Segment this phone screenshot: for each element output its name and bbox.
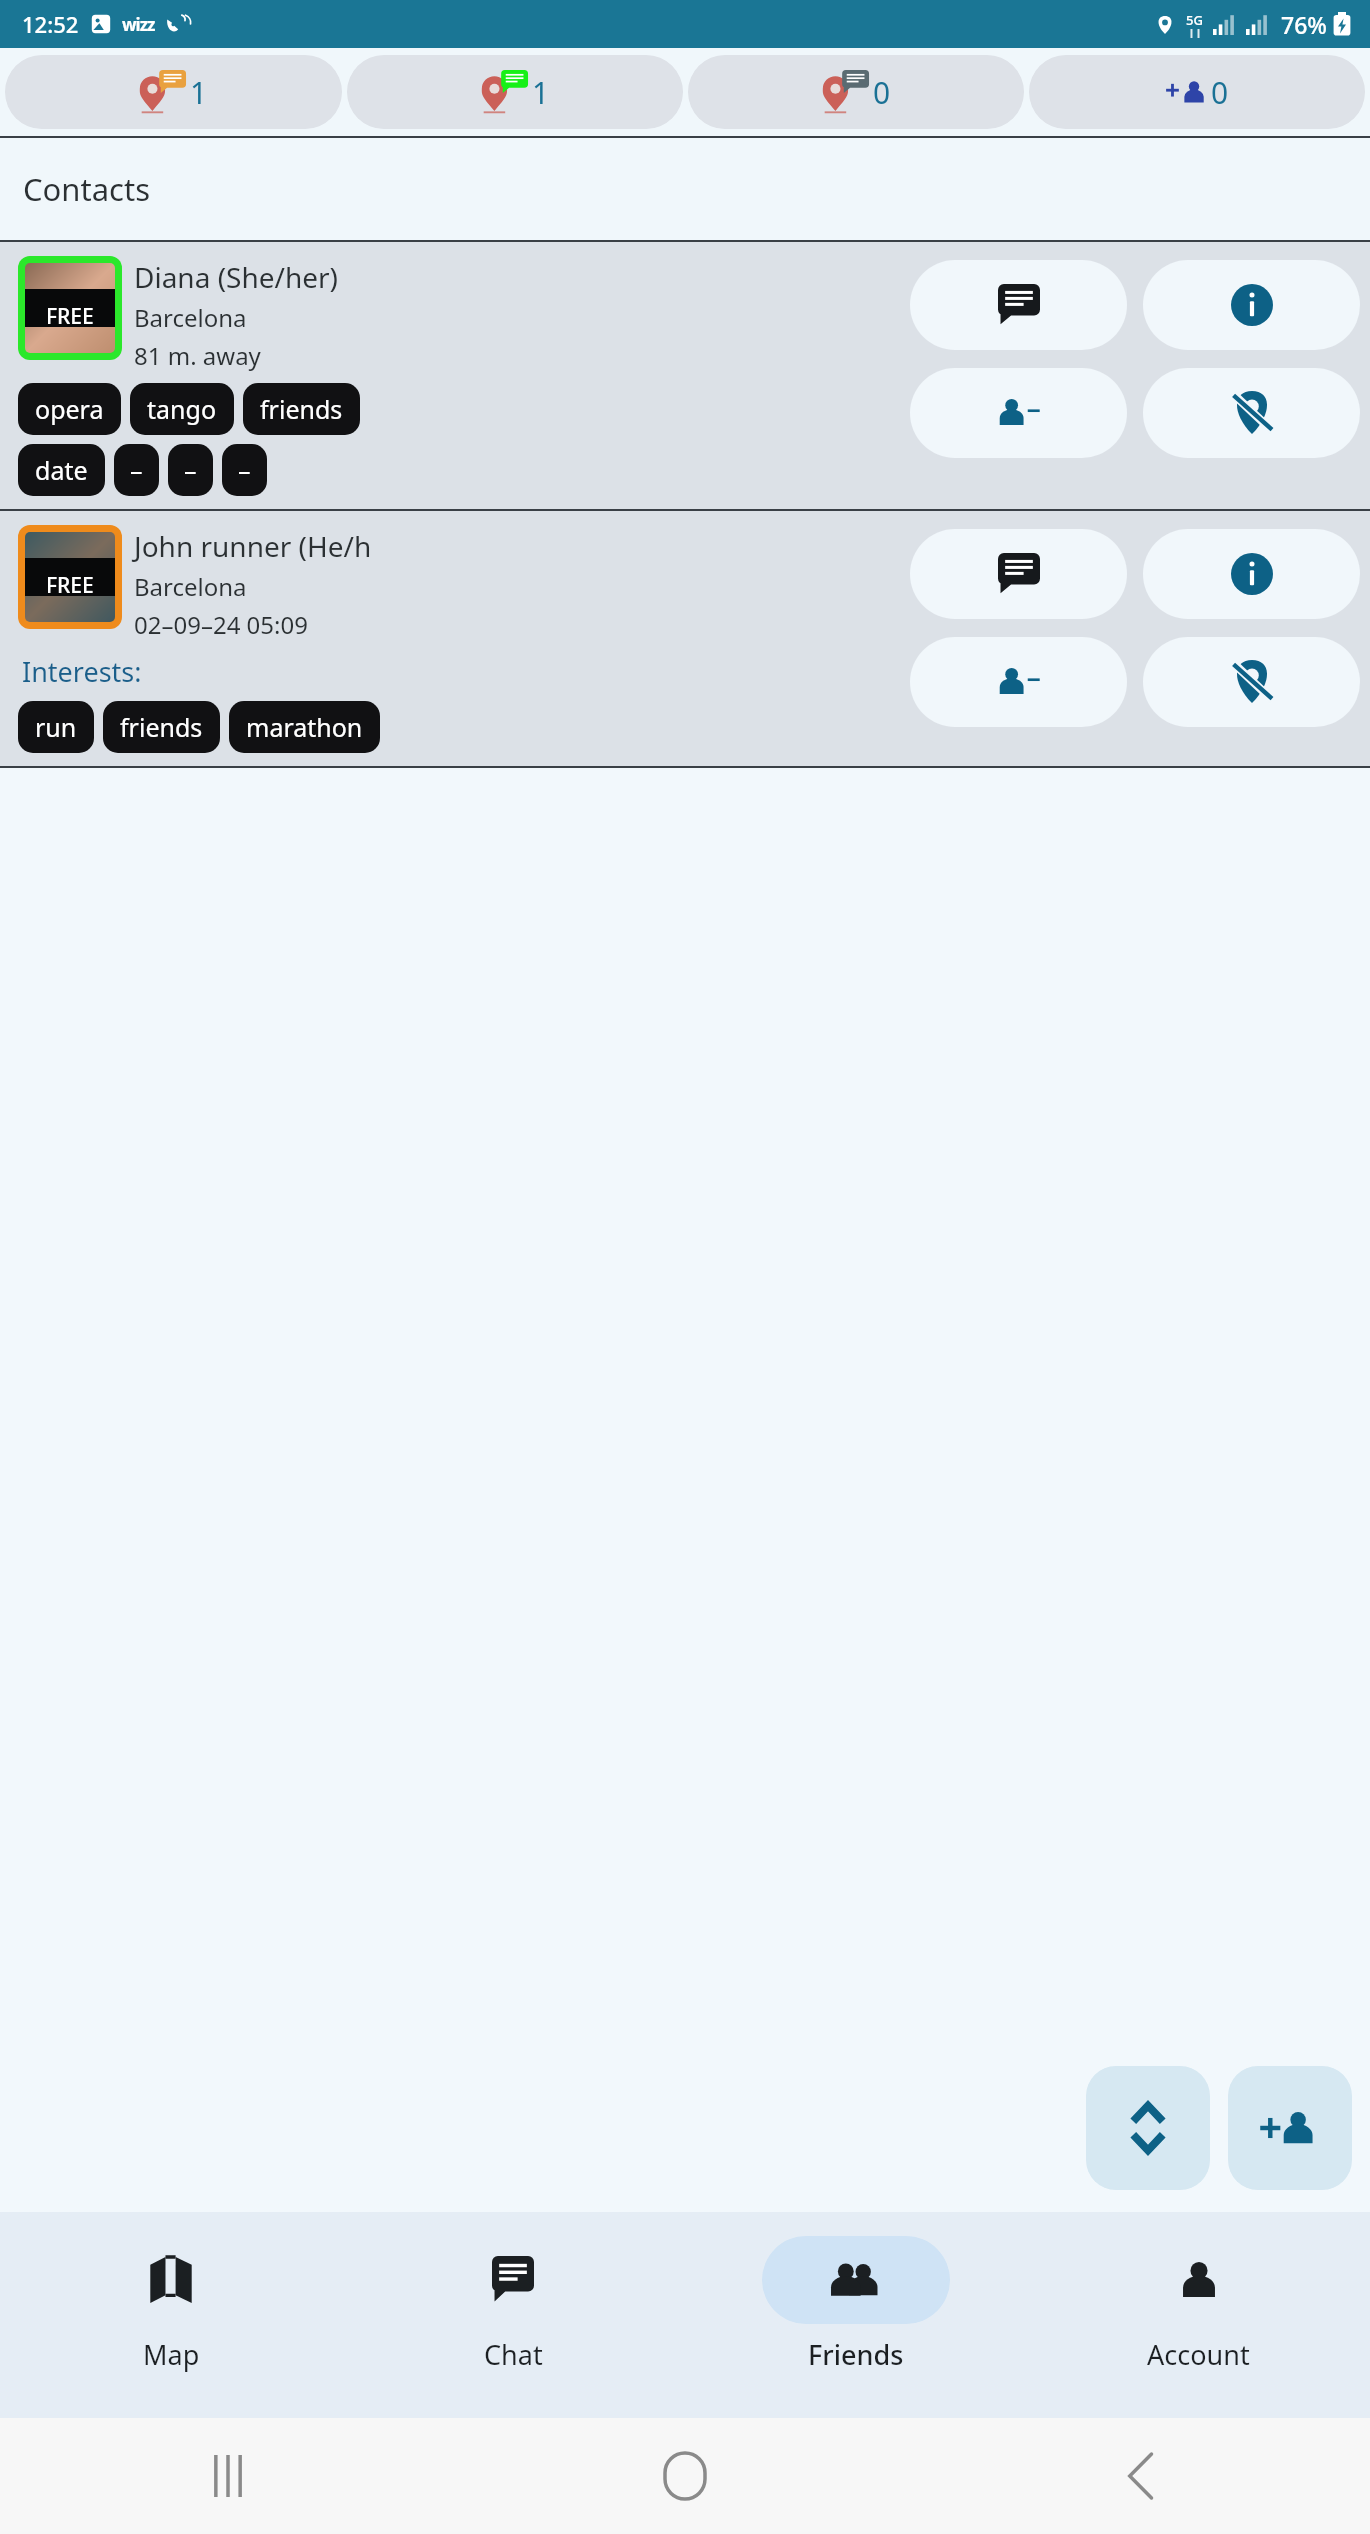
- staticText: FREE: [46, 302, 94, 331]
- button[interactable]: FREE: [0, 242, 1370, 511]
- button[interactable]: friends: [243, 383, 360, 435]
- staticText: Contacts: [23, 168, 151, 210]
- button[interactable]: Remove friend: [910, 637, 1127, 727]
- button[interactable]: marathon: [229, 701, 380, 753]
- staticText: friends: [120, 710, 203, 744]
- button[interactable]: Unread here: [5, 55, 342, 129]
- button[interactable]: Contacts: [0, 138, 1370, 240]
- staticText: run: [35, 710, 77, 744]
- staticText: 0: [873, 72, 891, 113]
- button[interactable]: –: [168, 444, 213, 496]
- button[interactable]: Details: [1143, 529, 1360, 619]
- staticText: date: [35, 453, 88, 487]
- button[interactable]: Scroll list: [1086, 2066, 1210, 2190]
- staticText: opera: [35, 392, 104, 426]
- button[interactable]: Chat: [342, 2212, 684, 2418]
- staticText: 5G: [1186, 11, 1203, 29]
- staticText: Map: [143, 2336, 200, 2373]
- staticText: 76%: [1281, 9, 1327, 40]
- staticText: Interests:: [22, 653, 142, 690]
- staticText: –: [238, 453, 251, 487]
- button[interactable]: Friends: [684, 2212, 1027, 2418]
- button[interactable]: FREE: [0, 511, 1370, 768]
- button[interactable]: Map: [0, 2212, 342, 2418]
- button[interactable]: Add friend requests: [1029, 55, 1365, 129]
- button[interactable]: Old messages: [688, 55, 1024, 129]
- button[interactable]: Send message: [910, 260, 1127, 350]
- staticText: FREE: [46, 571, 94, 600]
- button[interactable]: –: [222, 444, 267, 496]
- staticText: 12:52: [22, 9, 79, 39]
- staticText: Chat: [484, 2336, 543, 2373]
- staticText: Account: [1147, 2336, 1250, 2373]
- staticText: 1: [190, 72, 208, 113]
- button[interactable]: Send message: [910, 529, 1127, 619]
- button[interactable]: friends: [103, 701, 220, 753]
- staticText: 81 m. away: [134, 339, 261, 372]
- button[interactable]: Hide location: [1143, 637, 1360, 727]
- staticText: 1: [532, 72, 550, 113]
- staticText: 0: [1211, 72, 1229, 113]
- staticText: 02–09–24 05:09: [134, 608, 308, 641]
- staticText: Friends: [808, 2336, 904, 2373]
- button[interactable]: New messages: [347, 55, 683, 129]
- staticText: tango: [147, 392, 217, 426]
- button[interactable]: run: [18, 701, 94, 753]
- staticText: –: [184, 453, 197, 487]
- button[interactable]: date: [18, 444, 105, 496]
- button[interactable]: Details: [1143, 260, 1360, 350]
- button[interactable]: opera: [18, 383, 121, 435]
- button[interactable]: Add friend: [1228, 2066, 1352, 2190]
- button[interactable]: tango: [130, 383, 234, 435]
- button[interactable]: Account: [1027, 2212, 1370, 2418]
- staticText: Barcelona: [134, 301, 247, 334]
- staticText: wizz: [122, 13, 155, 36]
- staticText: Diana (She/her): [134, 258, 339, 296]
- button[interactable]: –: [114, 444, 159, 496]
- button[interactable]: Hide location: [1143, 368, 1360, 458]
- staticText: friends: [260, 392, 343, 426]
- staticText: marathon: [246, 710, 363, 744]
- staticText: John runner (He/h: [134, 527, 372, 565]
- staticText: Barcelona: [134, 570, 247, 603]
- staticText: –: [130, 453, 143, 487]
- button[interactable]: Remove friend: [910, 368, 1127, 458]
